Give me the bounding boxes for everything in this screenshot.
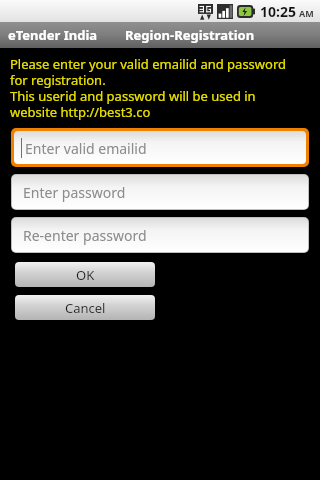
staticText: Enter valid emailid xyxy=(25,139,147,158)
button[interactable]: Re-enter password xyxy=(12,218,308,252)
staticText: Enter password xyxy=(23,183,126,202)
button[interactable]: OK xyxy=(15,262,155,287)
staticText: eTender India xyxy=(8,26,98,44)
staticText: AM xyxy=(299,7,314,19)
button[interactable]: Enter valid emailid xyxy=(14,131,306,164)
staticText: OK xyxy=(76,266,95,284)
staticText: Cancel xyxy=(65,299,106,317)
staticText: 10:25 xyxy=(260,2,296,21)
staticText: Region-Registration xyxy=(125,26,255,44)
button[interactable]: Enter password xyxy=(12,175,308,209)
staticText: Please enter your valid emailid and pass… xyxy=(10,55,287,120)
staticText: Re-enter password xyxy=(23,226,147,245)
button[interactable]: Cancel xyxy=(15,295,155,320)
